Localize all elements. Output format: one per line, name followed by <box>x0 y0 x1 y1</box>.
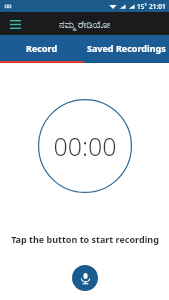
button[interactable]: Start recording <box>72 265 98 291</box>
staticText: Record <box>26 42 58 54</box>
button[interactable]: Saved Recordings <box>84 35 169 61</box>
staticText: Tap the button to start recording <box>11 233 159 245</box>
staticText: 21:01 <box>149 2 166 11</box>
staticText: ನಮ್ಮ ರೇಡಿಯೋ <box>59 17 111 31</box>
staticText: 00:00 <box>53 129 117 163</box>
staticText: 15¹ <box>137 2 147 11</box>
button[interactable]: Open navigation menu <box>6 15 24 33</box>
button[interactable]: Record <box>0 35 84 61</box>
staticText: Saved Recordings <box>87 42 166 54</box>
